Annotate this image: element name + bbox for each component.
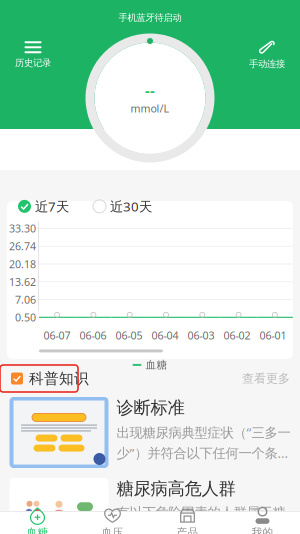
staticText: 少”）并符合以下任何一个条…: [116, 444, 288, 462]
button[interactable]: 查看更多: [242, 371, 300, 386]
staticText: 06-04: [151, 328, 178, 342]
staticText: 06-06: [79, 328, 106, 342]
button[interactable]: 手动连接: [238, 38, 296, 72]
staticText: mmol/L: [130, 101, 169, 115]
staticText: 0.50: [15, 310, 36, 324]
staticText: 26.74: [9, 239, 36, 253]
staticText: 科普知识: [29, 369, 89, 387]
button[interactable]: 历史记录: [4, 38, 62, 72]
staticText: 06-02: [223, 328, 250, 342]
button[interactable]: 糖尿病高危人群: [0, 473, 300, 534]
staticText: 06-05: [115, 328, 142, 342]
button[interactable]: 产品: [150, 505, 225, 534]
staticText: 20.18: [9, 257, 36, 271]
staticText: 06-03: [187, 328, 214, 342]
staticText: 历史记录: [15, 57, 51, 69]
staticText: 13.62: [9, 275, 36, 289]
button[interactable]: 科普知识: [0, 365, 78, 392]
button[interactable]: 近7天: [18, 197, 69, 215]
staticText: 查看更多: [242, 371, 290, 386]
staticText: 手机蓝牙待启动: [118, 12, 181, 23]
staticText: 糖尿病高危人群: [116, 478, 235, 499]
staticText: 7.06: [15, 292, 36, 307]
staticText: --: [145, 81, 155, 100]
staticText: 近7天: [35, 197, 69, 215]
staticText: 血压: [101, 526, 123, 534]
staticText: 产品: [176, 526, 198, 534]
staticText: 06-01: [259, 328, 286, 342]
button[interactable]: 近30天: [93, 197, 152, 215]
button[interactable]: 我的: [225, 505, 300, 534]
staticText: 近30天: [110, 197, 152, 215]
button[interactable]: 血糖: [0, 505, 75, 534]
staticText: 诊断标准: [116, 397, 184, 418]
staticText: 血糖: [26, 526, 48, 534]
staticText: 出现糖尿病典型症状（“三多一: [116, 423, 290, 441]
staticText: 33.30: [9, 221, 36, 235]
button[interactable]: 血压: [75, 505, 150, 534]
staticText: 手动连接: [249, 58, 285, 70]
staticText: 有以下危险因素的人群属于糖: [116, 504, 285, 521]
button[interactable]: 诊断标准: [0, 392, 300, 473]
staticText: 血糖: [145, 358, 167, 371]
staticText: 06-07: [43, 328, 70, 342]
staticText: 我的: [251, 526, 273, 534]
